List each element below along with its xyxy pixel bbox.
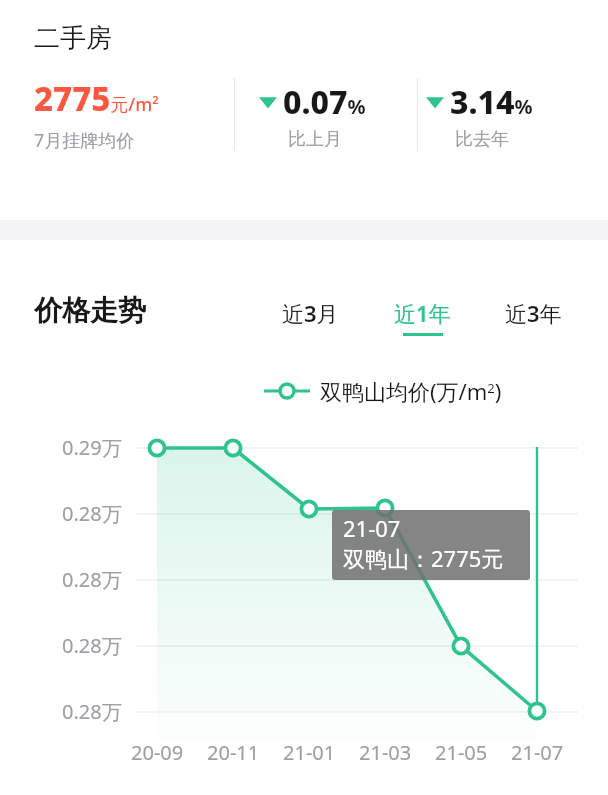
staticText: 2775元/m2 [34,76,159,121]
staticText: 20-09 [131,739,184,766]
staticText: 0.29万 [62,434,122,461]
staticText: 21-07 [343,513,401,543]
staticText: 价格走势 [34,293,146,328]
staticText: 21-07 [511,739,564,766]
staticText: 0.28万 [62,632,122,659]
staticText: 21-03 [359,739,412,766]
staticText: 3.14% [450,80,533,124]
other: Decrease [425,94,445,110]
staticText: 二手房 [34,22,112,55]
staticText: 7月挂牌均价 [34,128,135,153]
staticText: 0.28万 [62,698,122,725]
staticText: 0.28万 [62,566,122,593]
staticText: 近3年 [505,298,562,328]
staticText: 0.28万 [62,500,122,527]
button[interactable]: 近3年 [505,298,562,336]
staticText: 比上月 [288,128,342,151]
staticText: 21-05 [435,739,488,766]
staticText: 双鸭山均价(万/m2) [320,376,502,406]
staticText: 近3月 [282,298,339,328]
staticText: 20-11 [207,739,260,766]
staticText: 0.07% [283,80,366,124]
other: Decrease [258,94,278,110]
button[interactable]: 近1年 [394,298,451,336]
staticText: 近1年 [394,298,451,328]
staticText: 双鸭山：2775元 [343,543,504,573]
staticText: 比去年 [455,128,509,151]
button[interactable]: 近3月 [282,298,339,336]
staticText: 21-01 [283,739,336,766]
button[interactable]: Decrease [425,80,533,124]
button[interactable]: Decrease [258,80,366,124]
